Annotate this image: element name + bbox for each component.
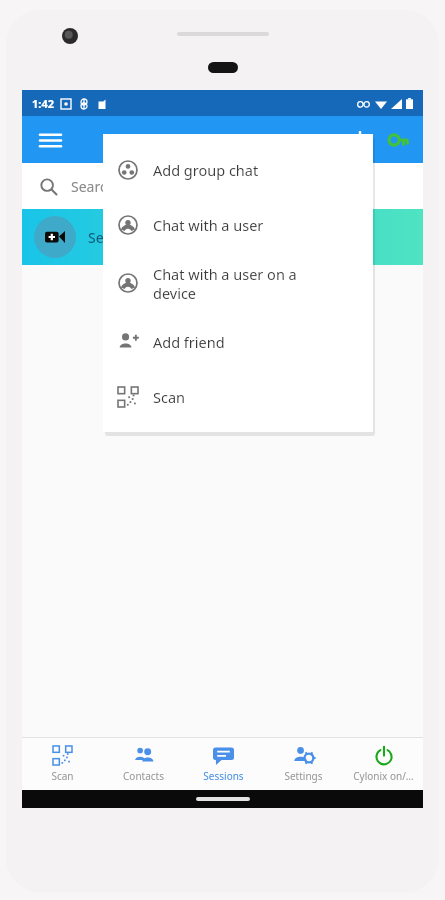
staticText: Scan xyxy=(51,769,74,783)
button[interactable]: Add group chat xyxy=(103,142,373,197)
button[interactable]: Cylonix on/… xyxy=(343,738,423,790)
staticText: Settings xyxy=(284,769,323,783)
button[interactable]: Chat with a user xyxy=(103,197,373,252)
staticText: Contacts xyxy=(123,769,164,783)
staticText: Session xyxy=(88,228,139,247)
staticText: Sessions xyxy=(188,128,258,151)
button[interactable]: Add xyxy=(341,121,379,159)
button[interactable]: Search xyxy=(22,163,423,209)
button[interactable]: Key xyxy=(379,121,417,159)
staticText: Chat with a user on a device xyxy=(153,264,297,303)
button[interactable]: Add friend xyxy=(103,314,373,369)
staticText: Sessions xyxy=(203,769,244,783)
staticText: Cylonix on/… xyxy=(353,769,414,783)
button[interactable]: Settings xyxy=(263,738,343,790)
button[interactable]: Contacts xyxy=(103,738,183,790)
staticText: Search xyxy=(71,177,116,196)
button[interactable]: Sessions xyxy=(183,738,263,790)
staticText: Scan xyxy=(153,387,186,407)
staticText: 1:42 xyxy=(32,96,54,111)
staticText: Add friend xyxy=(153,332,225,352)
button[interactable]: Scan xyxy=(103,369,373,424)
button[interactable]: Open navigation drawer xyxy=(30,120,70,160)
staticText: Add group chat xyxy=(153,160,259,180)
staticText: Chat with a user xyxy=(153,215,264,235)
button[interactable]: Session xyxy=(22,209,423,265)
button[interactable]: Scan xyxy=(22,738,103,790)
button[interactable]: Chat with a user on a device xyxy=(103,252,373,314)
